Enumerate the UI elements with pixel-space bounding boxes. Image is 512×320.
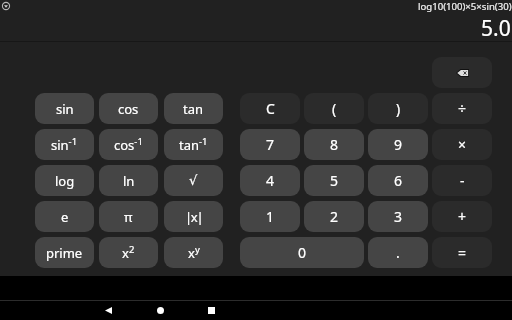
button[interactable]: sin bbox=[35, 93, 94, 124]
staticText: 0 bbox=[298, 243, 307, 262]
button[interactable]: Backspace bbox=[432, 57, 492, 88]
button[interactable]: log bbox=[35, 165, 94, 196]
button[interactable]: ln bbox=[99, 165, 158, 196]
button[interactable]: Square root bbox=[164, 165, 223, 196]
staticText: ÷ bbox=[458, 99, 467, 118]
staticText: C bbox=[266, 99, 275, 118]
button[interactable]: Back bbox=[100, 302, 117, 319]
staticText: 5.0 bbox=[481, 14, 511, 38]
button[interactable]: Absolute value bbox=[164, 201, 223, 232]
button[interactable]: Add bbox=[432, 201, 492, 232]
button[interactable]: 9 bbox=[368, 129, 428, 160]
button[interactable]: Inverse sine bbox=[35, 129, 94, 160]
staticText: log10(100)×5×sin(30) bbox=[418, 0, 512, 13]
staticText: ) bbox=[396, 99, 401, 118]
button[interactable]: Divide bbox=[432, 93, 492, 124]
staticText: × bbox=[458, 135, 467, 154]
staticText: . bbox=[396, 243, 400, 262]
staticText: 8 bbox=[330, 135, 339, 154]
button[interactable]: Recent apps bbox=[203, 302, 220, 319]
button[interactable]: x squared bbox=[99, 237, 158, 268]
button[interactable]: Multiply bbox=[432, 129, 492, 160]
staticText: |x| bbox=[185, 208, 203, 226]
staticText: tan-1 bbox=[179, 135, 208, 154]
button[interactable]: Home bbox=[152, 302, 169, 319]
staticText: 5 bbox=[330, 171, 339, 190]
button[interactable]: Equals bbox=[432, 237, 492, 268]
staticText: sin bbox=[56, 100, 74, 118]
button[interactable]: Pi bbox=[99, 201, 158, 232]
staticText: √ bbox=[189, 173, 198, 188]
staticText: e bbox=[61, 208, 69, 226]
button[interactable]: 2 bbox=[304, 201, 364, 232]
button[interactable]: prime bbox=[35, 237, 94, 268]
button[interactable]: 4 bbox=[240, 165, 300, 196]
staticText: log bbox=[55, 172, 75, 190]
button[interactable]: 0 bbox=[240, 237, 364, 268]
staticText: xy bbox=[188, 243, 200, 262]
staticText: sin-1 bbox=[51, 135, 78, 154]
button[interactable]: Open parenthesis bbox=[304, 93, 364, 124]
staticText: π bbox=[124, 208, 133, 226]
staticText: 9 bbox=[394, 135, 403, 154]
button[interactable]: 7 bbox=[240, 129, 300, 160]
staticText: 6 bbox=[394, 171, 403, 190]
staticText: cos bbox=[118, 100, 139, 118]
button[interactable]: 8 bbox=[304, 129, 364, 160]
staticText: tan bbox=[183, 100, 204, 118]
staticText: ln bbox=[123, 172, 135, 190]
button[interactable]: Inverse tangent bbox=[164, 129, 223, 160]
staticText: 4 bbox=[266, 171, 275, 190]
button[interactable]: tan bbox=[164, 93, 223, 124]
staticText: prime bbox=[46, 244, 83, 262]
staticText: cos-1 bbox=[114, 135, 143, 154]
button[interactable]: 5 bbox=[304, 165, 364, 196]
staticText: - bbox=[460, 171, 465, 190]
staticText: = bbox=[458, 243, 467, 262]
staticText: 2 bbox=[330, 207, 339, 226]
staticText: x2 bbox=[122, 243, 135, 262]
button[interactable]: Close parenthesis bbox=[368, 93, 428, 124]
button[interactable]: Inverse cosine bbox=[99, 129, 158, 160]
button[interactable]: cos bbox=[99, 93, 158, 124]
button[interactable]: 3 bbox=[368, 201, 428, 232]
button[interactable]: e bbox=[35, 201, 94, 232]
button[interactable]: 6 bbox=[368, 165, 428, 196]
staticText: 1 bbox=[266, 207, 275, 226]
button[interactable]: Decimal point bbox=[368, 237, 428, 268]
button[interactable]: Clear bbox=[240, 93, 300, 124]
button[interactable]: Subtract bbox=[432, 165, 492, 196]
button[interactable]: x to the power of y bbox=[164, 237, 223, 268]
staticText: 3 bbox=[394, 207, 403, 226]
staticText: ( bbox=[332, 99, 337, 118]
staticText: + bbox=[458, 207, 467, 226]
button[interactable]: 1 bbox=[240, 201, 300, 232]
staticText: 7 bbox=[266, 135, 275, 154]
